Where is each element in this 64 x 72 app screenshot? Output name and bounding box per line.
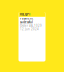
staticText: 12 Jun 2024	[20, 27, 39, 31]
staticText: RECEIPT	[20, 13, 31, 16]
staticText: Payment successful	[20, 17, 33, 24]
staticText: Order #A-1029	[20, 24, 42, 27]
